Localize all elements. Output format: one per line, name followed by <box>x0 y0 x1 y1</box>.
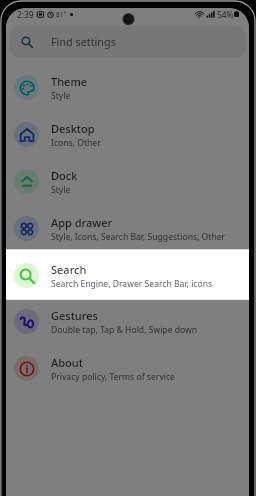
button[interactable]: Search <box>6 252 249 299</box>
staticText: Style <box>51 184 71 196</box>
staticText: 2:39 <box>17 9 34 20</box>
staticText: Dock <box>51 168 78 183</box>
button[interactable]: Gestures <box>6 298 249 345</box>
button[interactable]: Find settings <box>9 26 246 58</box>
staticText: Desktop <box>51 121 95 136</box>
button[interactable]: Dock <box>6 158 249 205</box>
staticText: App drawer <box>51 215 113 230</box>
button[interactable]: Theme <box>6 64 249 111</box>
staticText: 54% <box>217 9 234 20</box>
staticText: Theme <box>51 74 88 89</box>
staticText: About <box>51 355 83 370</box>
staticText: Search <box>51 262 87 277</box>
button[interactable]: Desktop <box>6 111 249 158</box>
button[interactable]: About <box>6 345 249 392</box>
staticText: Find settings <box>51 34 116 49</box>
staticText: Style, Icons, Search Bar, Suggestions, O… <box>51 231 226 243</box>
staticText: 81° <box>56 10 67 19</box>
staticText: Search Engine, Drawer Search Bar, icons <box>51 278 213 290</box>
staticText: Double tap, Tap & Hold, Swipe down <box>51 324 198 336</box>
button[interactable]: App drawer <box>6 205 249 252</box>
staticText: Icons, Other <box>51 137 101 149</box>
staticText: Style <box>51 90 71 102</box>
staticText: Privacy policy, Terms of service <box>51 371 175 383</box>
staticText: Gestures <box>51 308 98 323</box>
